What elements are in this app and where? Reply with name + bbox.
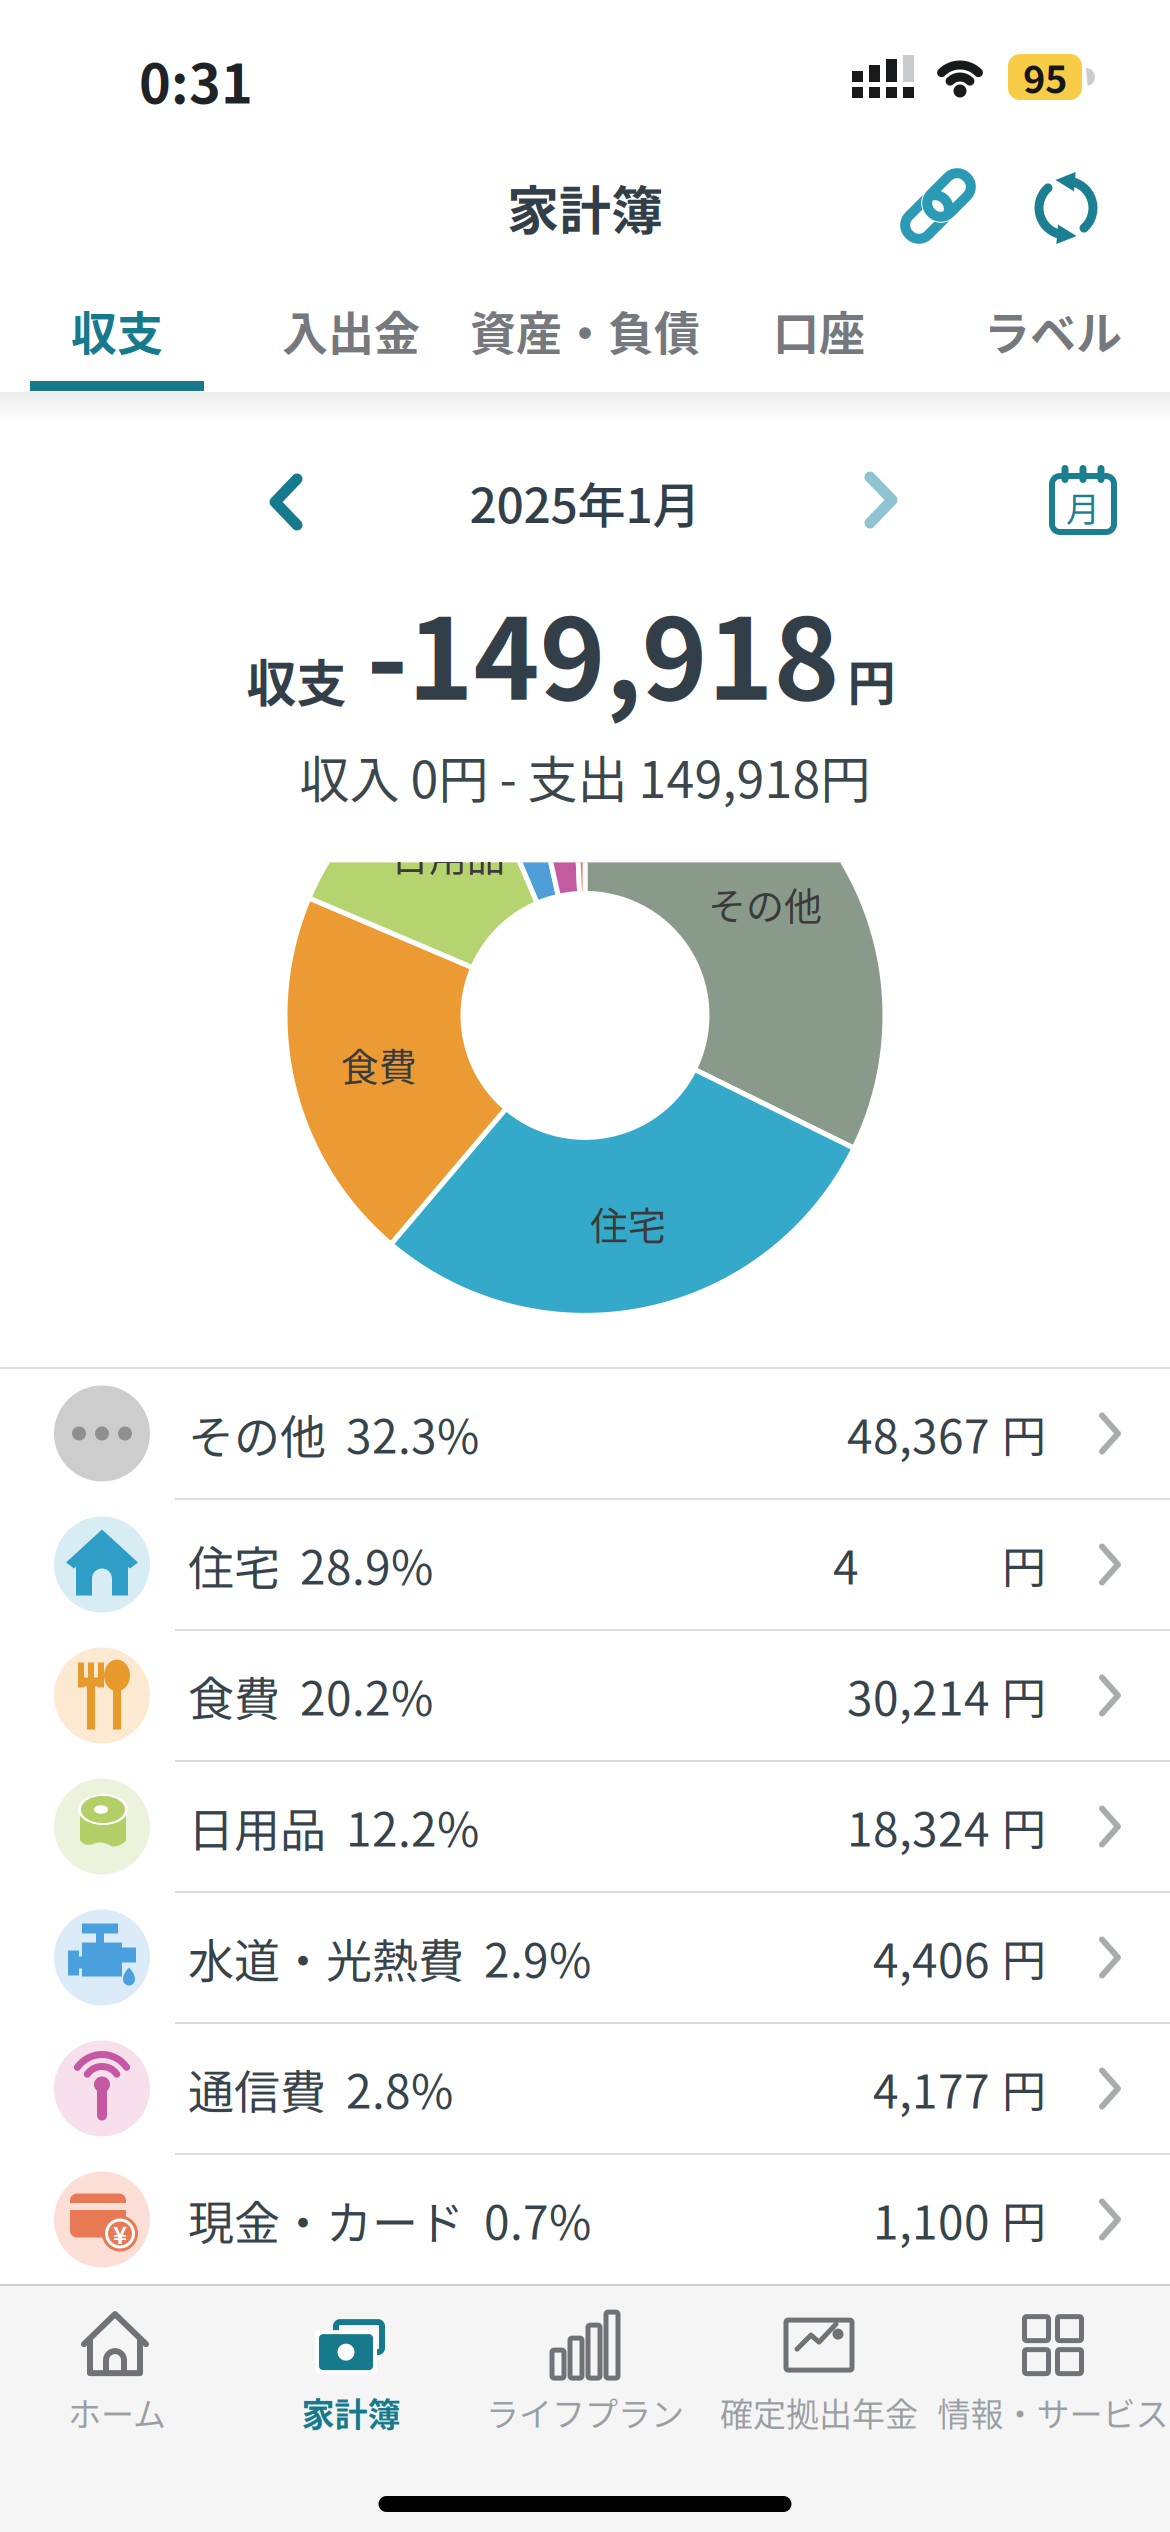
button[interactable]: 家計簿 bbox=[234, 2298, 468, 2448]
button[interactable]: 連携 bbox=[902, 170, 974, 242]
staticText: ホーム bbox=[68, 2388, 166, 2436]
button[interactable]: 収支 bbox=[0, 280, 234, 380]
button[interactable]: 次の月 bbox=[851, 470, 911, 530]
staticText: 収支 bbox=[71, 297, 163, 363]
staticText: -149,918 bbox=[366, 570, 839, 732]
staticText: 円 bbox=[1002, 2188, 1046, 2251]
staticText: 円 bbox=[1002, 1926, 1046, 1989]
button[interactable]: 前の月 bbox=[256, 472, 316, 532]
button[interactable]: 資産・負債 bbox=[468, 280, 702, 380]
staticText: 通信費 2.8% bbox=[188, 2055, 453, 2122]
button[interactable]: ライフプラン bbox=[468, 2298, 702, 2448]
staticText: 30,214 bbox=[847, 1662, 990, 1729]
staticText: ライフプラン bbox=[486, 2388, 684, 2436]
button[interactable]: 口座 bbox=[702, 280, 936, 380]
staticText: 48,367 bbox=[847, 1400, 990, 1467]
button[interactable]: 入出金 bbox=[234, 280, 468, 380]
staticText: 情報・サービス bbox=[937, 2388, 1168, 2436]
staticText: 確定拠出年金 bbox=[720, 2388, 918, 2436]
button[interactable]: 情報・サービス bbox=[936, 2298, 1170, 2448]
button[interactable]: 水道・光熱費 2.9% bbox=[0, 1893, 1170, 2022]
staticText: 円 bbox=[1002, 1533, 1046, 1596]
staticText: 日用品 bbox=[391, 827, 505, 882]
staticText: 日用品 12.2% bbox=[188, 1793, 479, 1860]
staticText: その他 bbox=[708, 876, 822, 931]
staticText: 口座 bbox=[773, 297, 865, 363]
staticText: 4,177 bbox=[873, 2055, 990, 2122]
staticText: 食費 20.2% bbox=[188, 1662, 433, 1729]
staticText: 食費 bbox=[341, 1037, 417, 1092]
staticText: 月 bbox=[1066, 482, 1100, 532]
staticText: 水道・光熱費 2.9% bbox=[188, 1924, 591, 1991]
staticText: 家計簿 bbox=[301, 2388, 400, 2436]
staticText: ¥ bbox=[113, 2216, 127, 2251]
button[interactable]: 更新 bbox=[1030, 170, 1102, 246]
staticText: 0:31 bbox=[139, 41, 253, 119]
button[interactable]: 日用品 12.2% bbox=[0, 1762, 1170, 1891]
button[interactable]: ホーム bbox=[0, 2298, 234, 2448]
button[interactable]: ¥ bbox=[0, 2155, 1170, 2284]
staticText: 入出金 bbox=[282, 297, 420, 363]
button[interactable]: 通信費 2.8% bbox=[0, 2024, 1170, 2153]
staticText: 18,324 bbox=[847, 1793, 990, 1860]
staticText: 現金・カード 0.7% bbox=[188, 2186, 591, 2253]
staticText: 住宅 bbox=[590, 1195, 666, 1250]
staticText: 円 bbox=[847, 645, 895, 714]
staticText: 1,100 bbox=[873, 2186, 990, 2253]
staticText: 4 bbox=[833, 1531, 859, 1598]
button[interactable]: 食費 20.2% bbox=[0, 1631, 1170, 1760]
staticText: 住宅 28.9% bbox=[188, 1531, 433, 1598]
staticText: 収支 bbox=[246, 644, 346, 716]
staticText: 円 bbox=[1002, 2057, 1046, 2120]
staticText: その他 32.3% bbox=[188, 1400, 479, 1467]
staticText: 円 bbox=[1002, 1402, 1046, 1465]
staticText: 円 bbox=[1002, 1664, 1046, 1727]
button[interactable]: 月を選択 bbox=[1047, 464, 1119, 536]
staticText: 2025年1月 bbox=[469, 467, 700, 537]
staticText: 95 bbox=[1023, 49, 1067, 104]
staticText: ラベル bbox=[984, 297, 1122, 363]
button[interactable]: その他 32.3% bbox=[0, 1369, 1170, 1498]
staticText: 資産・負債 bbox=[470, 297, 700, 363]
button[interactable]: 住宅 28.9% bbox=[0, 1500, 1170, 1629]
button[interactable]: ラベル bbox=[936, 280, 1170, 380]
staticText: 家計簿 bbox=[507, 169, 663, 245]
staticText: 円 bbox=[1002, 1795, 1046, 1858]
staticText: 4,406 bbox=[873, 1924, 990, 1991]
button[interactable]: 確定拠出年金 bbox=[702, 2298, 936, 2448]
staticText: 収入 0円 - 支出 149,918円 bbox=[299, 740, 870, 812]
